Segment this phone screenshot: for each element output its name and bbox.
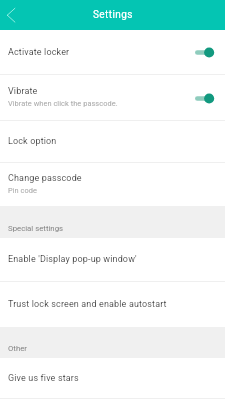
staticText: Vibrate — [8, 86, 38, 97]
button[interactable]: Enable 'Display pop-up window' — [0, 238, 225, 281]
staticText: Enable 'Display pop-up window' — [8, 254, 137, 265]
staticText: Lock option — [8, 136, 57, 147]
button[interactable]: Navigate up — [0, 0, 24, 30]
button[interactable]: Lock option — [0, 121, 225, 162]
staticText: Change passcode — [8, 173, 82, 184]
staticText: Special settings — [8, 224, 64, 233]
staticText: Settings — [93, 9, 133, 21]
staticText: Give us five stars — [8, 373, 79, 384]
staticText: Trust lock screen and enable autostart — [8, 299, 167, 310]
staticText: Vibrate when click the passcode. — [8, 99, 118, 108]
staticText: Other — [8, 344, 27, 353]
button[interactable]: Trust lock screen and enable autostart — [0, 282, 225, 327]
staticText: Activate locker — [8, 47, 70, 58]
button[interactable]: Vibrate — [0, 75, 225, 120]
button[interactable]: Change passcode — [0, 163, 225, 206]
staticText: Pin code — [8, 186, 38, 195]
button[interactable]: Activate locker — [0, 30, 225, 74]
button[interactable]: Give us five stars — [0, 358, 225, 398]
